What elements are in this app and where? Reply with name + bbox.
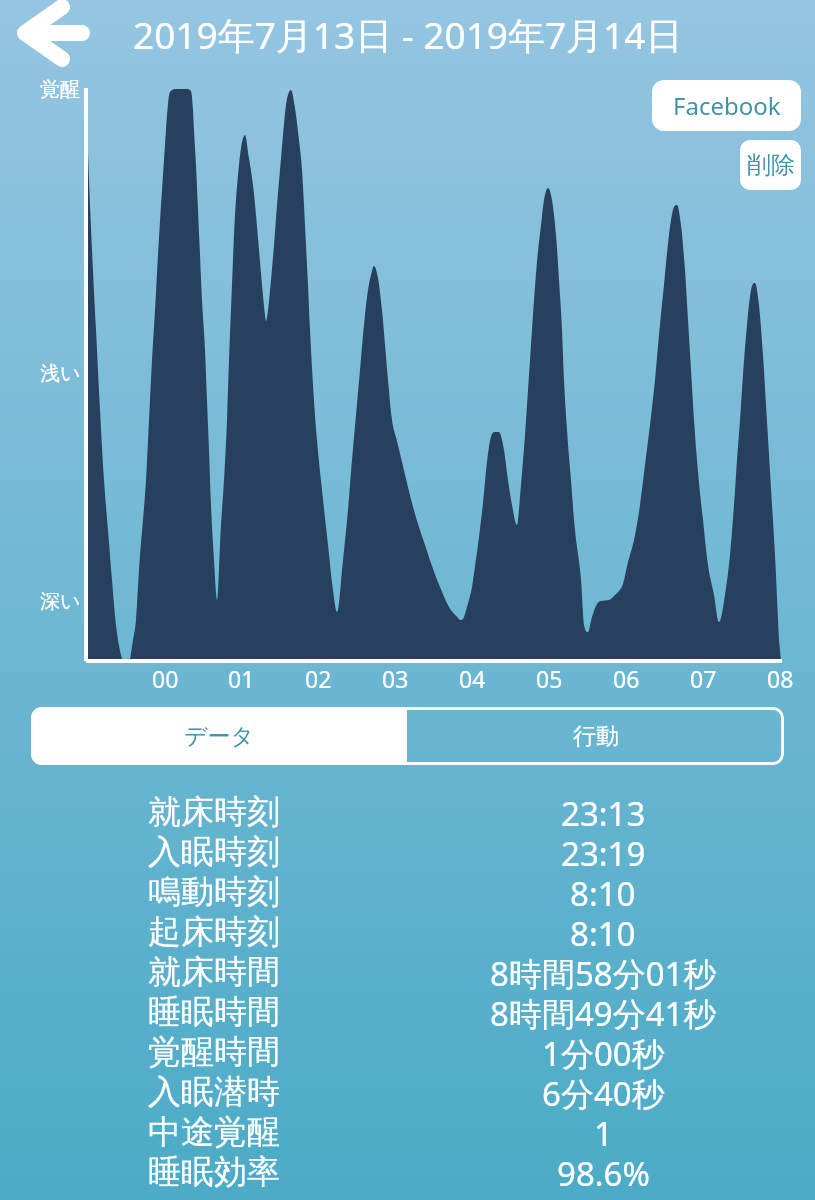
staticText: 就床時刻: [148, 791, 280, 831]
button[interactable]: 睡眠時間: [0, 991, 815, 1031]
button[interactable]: 入眠時刻: [0, 831, 815, 871]
staticText: 07: [690, 663, 717, 694]
staticText: 8:10: [570, 911, 636, 951]
staticText: 23:19: [561, 831, 646, 871]
button[interactable]: 行動: [407, 707, 784, 765]
staticText: 2019年7月13日 - 2019年7月14日: [133, 9, 683, 60]
button[interactable]: データ: [31, 707, 407, 765]
staticText: 覚醒時間: [148, 1031, 280, 1071]
staticText: Facebook: [673, 89, 781, 122]
button[interactable]: 起床時刻: [0, 911, 815, 951]
staticText: 8時間49分41秒: [490, 991, 717, 1031]
staticText: 1: [594, 1111, 613, 1151]
staticText: 浅い: [40, 361, 81, 386]
staticText: 01: [228, 663, 255, 694]
button[interactable]: 入眠潜時: [0, 1071, 815, 1111]
button[interactable]: Facebook: [652, 80, 801, 131]
staticText: 08: [767, 663, 794, 694]
staticText: 98.6%: [557, 1151, 650, 1191]
button[interactable]: 就床時刻: [0, 791, 815, 831]
staticText: 睡眠効率: [148, 1151, 280, 1191]
staticText: 覚醒: [40, 77, 80, 102]
button[interactable]: 削除: [740, 140, 801, 190]
staticText: 入眠時刻: [148, 831, 280, 871]
staticText: 8:10: [570, 871, 636, 911]
button[interactable]: Back: [6, 0, 102, 72]
staticText: 削除: [747, 150, 795, 180]
button[interactable]: 睡眠効率: [0, 1151, 815, 1191]
staticText: 鳴動時刻: [148, 871, 280, 911]
staticText: 行動: [573, 722, 619, 751]
button[interactable]: 鳴動時刻: [0, 871, 815, 911]
staticText: 睡眠時間: [148, 991, 280, 1031]
button[interactable]: 就床時間: [0, 951, 815, 991]
staticText: 入眠潜時: [148, 1071, 280, 1111]
staticText: 起床時刻: [148, 911, 280, 951]
staticText: 00: [152, 663, 179, 694]
staticText: 23:13: [561, 791, 646, 831]
staticText: 就床時間: [148, 951, 280, 991]
staticText: 02: [305, 663, 332, 694]
staticText: 05: [536, 663, 563, 694]
staticText: 8時間58分01秒: [490, 951, 717, 991]
staticText: 深い: [40, 589, 81, 614]
button[interactable]: 中途覚醒: [0, 1111, 815, 1151]
staticText: 03: [382, 663, 409, 694]
staticText: 中途覚醒: [148, 1111, 280, 1151]
staticText: 1分00秒: [542, 1031, 665, 1071]
button[interactable]: 覚醒時間: [0, 1031, 815, 1071]
staticText: 6分40秒: [542, 1071, 665, 1111]
staticText: 06: [613, 663, 640, 694]
staticText: データ: [184, 722, 255, 751]
staticText: 04: [459, 663, 486, 694]
